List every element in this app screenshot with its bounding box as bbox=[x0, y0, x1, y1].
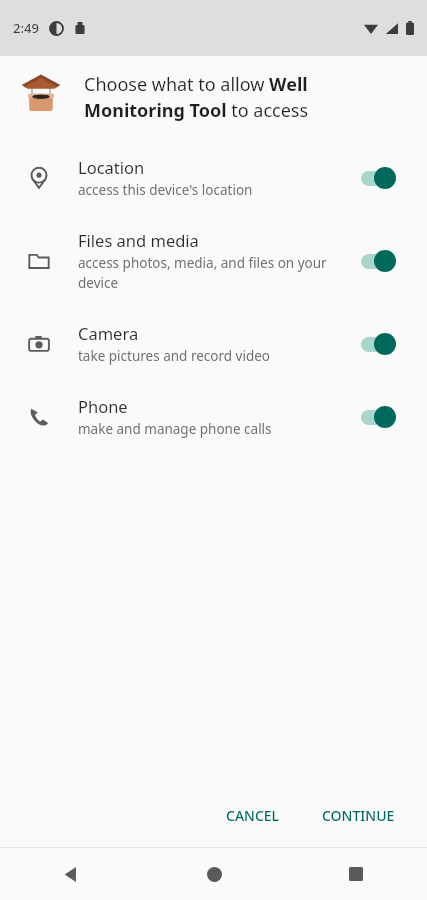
staticText: take pictures and record video bbox=[78, 347, 270, 365]
staticText: CANCEL bbox=[226, 806, 280, 825]
staticText: make and manage phone calls bbox=[78, 420, 272, 438]
button[interactable]: Phone bbox=[0, 380, 427, 453]
button[interactable]: Toggle permission bbox=[359, 331, 405, 357]
staticText: CONTINUE bbox=[322, 806, 395, 825]
button[interactable]: Home bbox=[143, 848, 285, 900]
staticText: 2:49 bbox=[13, 19, 39, 37]
staticText: Location bbox=[78, 156, 145, 178]
button[interactable]: CANCEL bbox=[212, 796, 294, 835]
button[interactable]: Location bbox=[0, 141, 427, 214]
button[interactable]: Toggle permission bbox=[359, 404, 405, 430]
staticText: access photos, media, and files on your … bbox=[78, 254, 345, 292]
staticText: access this device's location bbox=[78, 181, 253, 199]
button[interactable]: Back bbox=[0, 848, 143, 900]
staticText: Files and media bbox=[78, 229, 199, 251]
staticText: Camera bbox=[78, 322, 139, 344]
staticText: Choose what to allow Well Monitoring Too… bbox=[84, 72, 397, 123]
button[interactable]: Camera bbox=[0, 307, 427, 380]
staticText: Phone bbox=[78, 395, 128, 417]
button[interactable]: Files and media bbox=[0, 214, 427, 307]
button[interactable]: CONTINUE bbox=[308, 796, 409, 835]
button[interactable]: Toggle permission bbox=[359, 165, 405, 191]
button[interactable]: Recent apps bbox=[285, 848, 427, 900]
button[interactable]: Toggle permission bbox=[359, 248, 405, 274]
